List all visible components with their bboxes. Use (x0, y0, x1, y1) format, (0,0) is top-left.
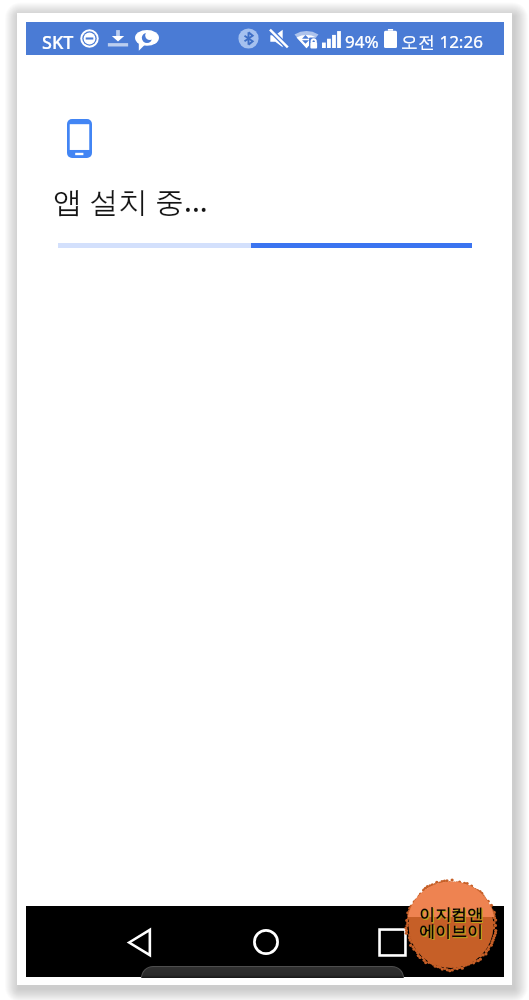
staticText: 94% (345, 30, 379, 53)
staticText: 에이브이 (420, 923, 484, 943)
button[interactable]: Home (226, 910, 306, 974)
staticText: 앱 설치 중... (53, 181, 208, 221)
button[interactable]: Recents (352, 910, 432, 974)
staticText: 에이브이 (419, 922, 483, 942)
button[interactable]: Back (99, 910, 179, 974)
staticText: 이지컴앤 (420, 906, 484, 926)
staticText: SKT (42, 30, 74, 55)
staticText: 이지컴앤 (419, 905, 483, 925)
staticText: 오전 12:26 (401, 30, 483, 53)
